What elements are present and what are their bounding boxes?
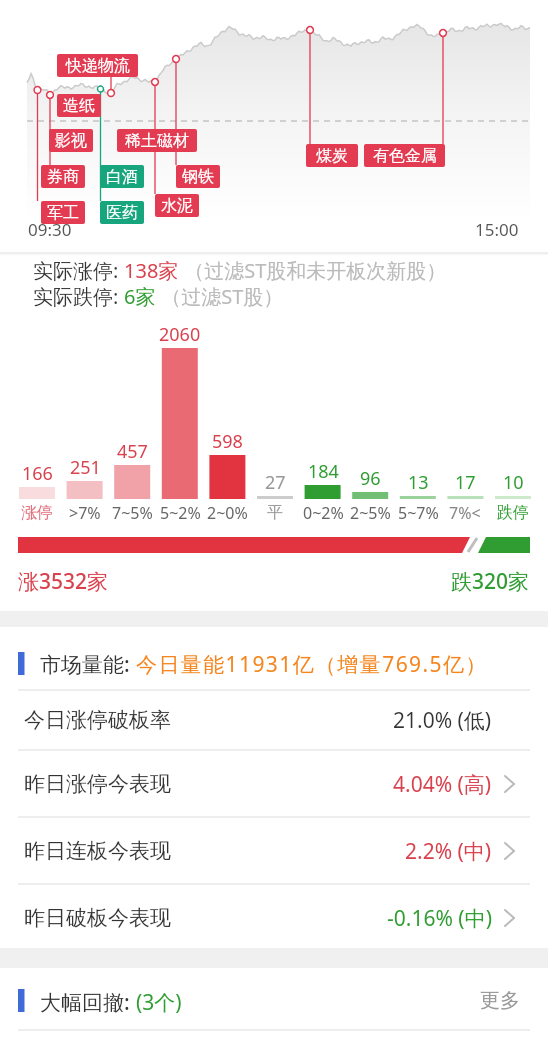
button[interactable]: 市场量能: [40, 650, 488, 679]
staticText: 跌停 [497, 503, 529, 523]
button[interactable]: 医药 [100, 201, 144, 224]
staticText: 09:30 [28, 218, 72, 241]
button[interactable]: 造纸 [57, 94, 101, 117]
button[interactable] [0, 751, 548, 817]
staticText: 21.0% (低) [393, 706, 492, 735]
button[interactable]: 券商 [41, 165, 85, 188]
staticText: 457 [117, 439, 148, 463]
staticText: 实际跌停: [33, 283, 124, 310]
button[interactable]: 快递物流 [57, 54, 138, 77]
button[interactable]: 大幅回撤: [40, 988, 182, 1017]
button[interactable]: 更多 [420, 988, 520, 1013]
staticText: 6家 [124, 283, 156, 310]
staticText: 造纸 [63, 96, 95, 116]
staticText: 稀土磁材 [125, 131, 189, 151]
staticText: 券商 [47, 167, 79, 187]
staticText: 2060 [159, 322, 201, 346]
staticText: 平 [267, 503, 283, 523]
staticText: -0.16% (中) [387, 904, 492, 933]
staticText: 今日涨停破板率 [24, 707, 171, 733]
staticText: （过滤ST股和未开板次新股） [179, 257, 447, 284]
staticText: 水泥 [161, 196, 193, 216]
button[interactable]: 稀土磁材 [117, 129, 197, 152]
staticText: 10 [503, 470, 524, 494]
staticText: (3个) [136, 988, 182, 1017]
staticText: （过滤ST股） [156, 283, 284, 310]
staticText: 实际涨停: [33, 257, 124, 284]
staticText: 96 [360, 466, 381, 490]
staticText: 今日量能11931亿（增量769.5亿） [136, 650, 488, 679]
staticText: 昨日破板今表现 [24, 905, 171, 931]
staticText: 13 [408, 470, 429, 494]
button[interactable] [0, 687, 548, 753]
staticText: 医药 [106, 203, 138, 223]
staticText: >7% [69, 502, 101, 524]
button[interactable]: 影视 [49, 129, 93, 152]
staticText: 7%< [449, 502, 481, 524]
staticText: 166 [22, 461, 53, 485]
button[interactable]: 水泥 [155, 194, 199, 217]
staticText: 17 [455, 470, 476, 494]
staticText: 0~2% [303, 502, 344, 524]
staticText: 更多 [480, 988, 520, 1013]
staticText: 钢铁 [182, 167, 214, 187]
staticText: 7~5% [112, 502, 153, 524]
staticText: 184 [308, 459, 339, 483]
staticText: 军工 [47, 203, 79, 223]
staticText: 138家 [124, 257, 179, 284]
staticText: 快递物流 [66, 56, 130, 76]
staticText: 2~5% [350, 502, 391, 524]
staticText: 市场量能: [40, 650, 136, 679]
staticText: 白酒 [106, 167, 138, 187]
staticText: 5~7% [398, 502, 439, 524]
staticText: 跌320家 [451, 567, 530, 596]
button[interactable]: 白酒 [100, 165, 144, 188]
staticText: 27 [265, 470, 286, 494]
staticText: 2~0% [207, 502, 248, 524]
staticText: 4.04% (高) [393, 770, 492, 799]
staticText: 大幅回撤: [40, 988, 136, 1017]
button[interactable] [0, 818, 548, 884]
button[interactable]: 有色金属 [364, 144, 445, 167]
button[interactable] [0, 885, 548, 951]
staticText: 昨日涨停今表现 [24, 771, 171, 797]
staticText: 251 [70, 455, 101, 479]
staticText: 涨3532家 [18, 567, 109, 596]
staticText: 煤炭 [316, 146, 348, 166]
staticText: 5~2% [160, 502, 201, 524]
staticText: 有色金属 [373, 146, 437, 166]
button[interactable]: 钢铁 [176, 165, 220, 188]
button[interactable]: 军工 [41, 201, 85, 224]
staticText: 15:00 [475, 218, 519, 241]
staticText: 昨日连板今表现 [24, 838, 171, 864]
staticText: 2.2% (中) [405, 837, 492, 866]
staticText: 涨停 [21, 503, 53, 523]
button[interactable]: 煤炭 [306, 144, 358, 167]
staticText: 影视 [55, 131, 87, 151]
staticText: 598 [212, 429, 243, 453]
